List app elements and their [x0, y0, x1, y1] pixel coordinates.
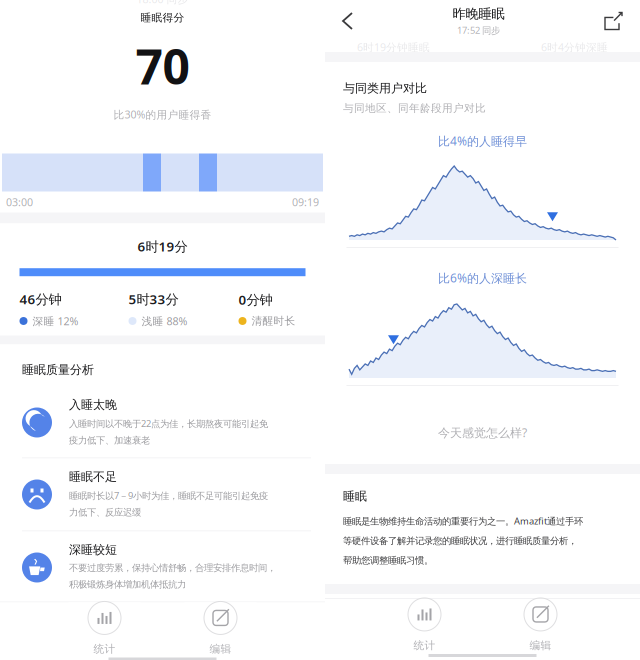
staticText: 入睡时间以不晚于22点为佳，长期熬夜可能引起免 [69, 417, 268, 430]
staticText: 睡眠时长以7－9小时为佳，睡眠不足可能引起免疫 [69, 489, 268, 502]
staticText: 浅睡 88% [141, 314, 187, 328]
button[interactable]: 睡眠不足 [0, 458, 325, 530]
button[interactable]: 统计 [388, 599, 460, 651]
staticText: 睡眠是生物维持生命活动的重要行为之一。Amazfit通过手环 [343, 515, 583, 527]
button[interactable]: 统计 [68, 602, 140, 654]
staticText: 比4%的人睡得早 [438, 133, 527, 149]
staticText: 不要过度劳累，保持心情舒畅，合理安排作息时间， [69, 562, 276, 574]
staticText: 统计 [93, 642, 115, 655]
staticText: 6时19分钟睡眠 [357, 40, 430, 54]
staticText: 比6%的人深睡长 [438, 270, 527, 286]
button[interactable]: Share [591, 0, 640, 41]
staticText: 6时19分 [137, 237, 187, 255]
staticText: 力低下、反应迟缓 [69, 507, 141, 518]
button[interactable]: Back [325, 1, 366, 41]
staticText: 昨晚睡眠 [452, 6, 504, 22]
staticText: 睡眠 [343, 489, 367, 504]
staticText: 统计 [413, 639, 435, 652]
staticText: 18:00 同步 [136, 0, 188, 6]
staticText: 帮助您调整睡眠习惯。 [343, 555, 433, 566]
staticText: 编辑 [529, 639, 551, 652]
staticText: 清醒时长 [251, 314, 295, 327]
button[interactable]: 深睡较短 [0, 531, 325, 601]
staticText: 70 [135, 34, 189, 98]
staticText: 5时33分 [128, 290, 178, 308]
staticText: 46分钟 [19, 290, 61, 308]
staticText: 睡眠质量分析 [22, 362, 94, 377]
staticText: 入睡太晚 [69, 397, 117, 412]
button[interactable]: 今天感觉怎么样? [325, 424, 640, 441]
staticText: 6时4分钟深睡 [541, 40, 608, 54]
staticText: 17:52 同步 [457, 24, 500, 36]
staticText: 今天感觉怎么样? [438, 424, 527, 440]
staticText: 疫力低下、加速衰老 [69, 435, 150, 446]
staticText: 编辑 [209, 642, 231, 655]
staticText: 深睡较短 [69, 542, 117, 557]
staticText: 与同地区、同年龄段用户对比 [343, 102, 486, 115]
staticText: 积极锻炼身体增加机体抵抗力 [69, 579, 186, 590]
staticText: 等硬件设备了解并记录您的睡眠状况，进行睡眠质量分析， [343, 535, 577, 547]
staticText: 比30%的用户睡得香 [113, 107, 211, 121]
button[interactable]: 入睡太晚 [0, 386, 325, 457]
staticText: 深睡 12% [32, 314, 78, 328]
staticText: 03:00 [6, 195, 33, 209]
staticText: 睡眠得分 [140, 11, 184, 24]
button[interactable]: 编辑 [184, 602, 256, 654]
staticText: 09:19 [292, 195, 319, 209]
staticText: 睡眠不足 [69, 469, 117, 484]
staticText: 与同类用户对比 [343, 81, 427, 96]
button[interactable]: 编辑 [504, 599, 576, 651]
staticText: 0分钟 [238, 291, 272, 308]
